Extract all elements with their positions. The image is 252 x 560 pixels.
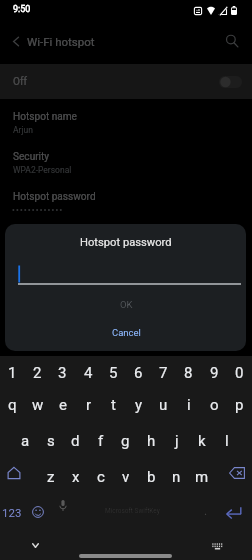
button[interactable]: t [101,391,126,419]
staticText: 7 [159,364,168,382]
button[interactable]: l [214,427,239,455]
button[interactable]: f [88,427,113,455]
staticText: v [122,468,130,486]
staticText: c [97,468,105,486]
button[interactable]: Hotspot password [0,185,252,223]
button[interactable]: j [164,427,189,455]
staticText: k [198,432,206,450]
button[interactable]: m [189,463,214,491]
staticText: p [235,396,244,414]
staticText: Hotspot password [80,236,172,249]
staticText: n [172,468,181,486]
button[interactable]: u [151,391,176,419]
button[interactable]: g [113,427,138,455]
button[interactable]: Emoji [28,499,48,525]
staticText: Security [13,151,50,163]
button[interactable]: Switch keyboard [208,537,226,555]
staticText: Microsoft SwiftKey [105,507,160,515]
button[interactable]: 9 [202,359,227,387]
staticText: Hotspot password [13,191,96,203]
staticText: w [32,396,44,414]
button[interactable]: Back [4,29,28,53]
button[interactable]: d [63,427,88,455]
button[interactable]: Backspace [224,459,250,487]
staticText: h [147,432,156,450]
button[interactable]: o [202,391,227,419]
button[interactable]: k [189,427,214,455]
staticText: a [21,432,30,450]
button[interactable]: 6 [126,359,151,387]
button[interactable]: 7 [151,359,176,387]
staticText: b [147,468,156,486]
staticText: j [175,432,179,450]
staticText: 8 [184,364,193,382]
staticText: r [86,396,92,414]
button[interactable]: i [176,391,201,419]
button[interactable]: x [63,463,88,491]
staticText: WPA2-Personal [13,165,72,175]
button[interactable]: Enter [219,499,247,525]
button[interactable]: Off [0,64,252,99]
staticText: OK [120,299,133,310]
staticText: Arjun [13,125,33,135]
button[interactable]: Security [0,145,252,183]
staticText: 9 [210,364,219,382]
staticText: Hotspot name [13,111,77,123]
button[interactable]: Hide keyboard [26,536,44,554]
staticText: d [71,432,80,450]
button[interactable]: c [88,463,113,491]
staticText: 123 [2,506,22,519]
button[interactable]: q [0,391,25,419]
button[interactable]: r [76,391,101,419]
button[interactable]: v [113,463,138,491]
staticText: e [59,396,67,414]
staticText: 0 [235,364,244,382]
staticText: i [187,396,191,414]
button[interactable]: Cancel [94,323,158,341]
button[interactable]: h [139,427,164,455]
staticText: q [8,396,17,414]
button[interactable]: 4 [76,359,101,387]
staticText: Cancel [112,327,141,338]
button[interactable]: Shift [1,459,27,487]
button[interactable]: 0 [227,359,252,387]
button[interactable]: 8 [176,359,201,387]
button[interactable]: p [227,391,252,419]
staticText: t [111,396,116,414]
staticText: 4 [84,364,93,382]
staticText: o [210,396,219,414]
button[interactable]: a [13,427,38,455]
button[interactable]: z [38,463,63,491]
staticText: u [159,396,168,414]
button[interactable]: Search [220,29,244,53]
staticText: 9:50 [13,4,31,15]
button[interactable]: n [164,463,189,491]
button[interactable]: Voice input [55,496,71,514]
staticText: 5 [109,364,118,382]
button[interactable]: OK [94,295,158,313]
button[interactable]: 123 [0,499,24,525]
staticText: 3 [58,364,67,382]
button[interactable]: y [126,391,151,419]
staticText: Off [13,76,27,88]
staticText: 6 [134,364,143,382]
staticText: y [135,396,143,414]
button[interactable]: s [38,427,63,455]
staticText: f [98,432,104,450]
button[interactable]: 3 [50,359,75,387]
button[interactable]: e [50,391,75,419]
staticText: 1 [8,364,17,382]
button[interactable]: w [25,391,50,419]
button[interactable]: 2 [25,359,50,387]
staticText: 2 [33,364,42,382]
staticText: Wi-Fi hotspot [27,35,95,48]
staticText: . [204,504,208,518]
button[interactable]: b [139,463,164,491]
button[interactable]: 1 [0,359,25,387]
button[interactable]: 5 [101,359,126,387]
staticText: s [47,432,55,450]
staticText: l [225,432,229,450]
button[interactable]: Hotspot name [0,105,252,143]
